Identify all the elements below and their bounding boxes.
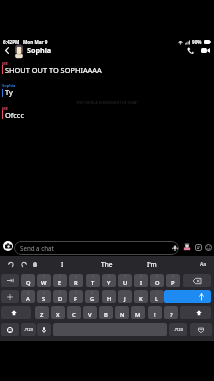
button[interactable]: Redo <box>18 259 28 269</box>
button[interactable]: H <box>102 290 116 303</box>
button[interactable]: Shift <box>180 306 211 319</box>
button[interactable]: T <box>86 274 100 287</box>
staticText: J <box>124 295 126 303</box>
button[interactable]: C <box>67 306 81 319</box>
button[interactable]: U <box>118 274 132 287</box>
staticText: X <box>56 311 60 319</box>
staticText: 8 <box>140 275 142 279</box>
staticText: Ofccc <box>5 110 24 120</box>
staticText: G <box>90 295 95 303</box>
button[interactable]: Send <box>164 290 211 303</box>
button[interactable]: I <box>52 258 72 270</box>
staticText: ) <box>157 291 158 295</box>
button[interactable]: Send a chat <box>14 241 179 255</box>
button[interactable]: L <box>150 290 164 303</box>
button[interactable]: Symbols <box>21 323 36 336</box>
staticText: T <box>91 279 95 287</box>
staticText: C <box>72 311 76 319</box>
button[interactable]: Shift <box>1 306 31 319</box>
button[interactable]: O <box>150 274 164 287</box>
button[interactable]: Voice input <box>37 323 51 336</box>
staticText: Mon Mar 9 <box>23 39 48 45</box>
staticText: Send a chat <box>20 244 54 252</box>
staticText: Q <box>26 279 31 287</box>
button[interactable]: K <box>134 290 148 303</box>
staticText: N <box>120 311 125 319</box>
button[interactable]: R <box>69 274 83 287</box>
button[interactable]: B <box>99 306 113 319</box>
button[interactable]: X <box>51 306 65 319</box>
staticText: 7 <box>124 275 126 279</box>
staticText: The <box>101 260 113 269</box>
button[interactable]: I <box>134 274 148 287</box>
staticText: ( <box>141 291 142 295</box>
staticText: V <box>88 311 92 319</box>
button[interactable]: M <box>131 306 145 319</box>
staticText: I <box>140 279 143 287</box>
button[interactable]: Bitmoji <box>182 242 192 252</box>
staticText: ! <box>154 311 156 319</box>
staticText: ' <box>74 307 75 311</box>
staticText: YOU TOOK A SCREENSHOT OF CHAT! <box>0 100 214 105</box>
button[interactable]: Q <box>21 274 35 287</box>
button[interactable]: Stickers <box>193 242 203 252</box>
button[interactable]: ! <box>148 306 162 319</box>
staticText: P <box>171 279 175 287</box>
button[interactable]: Emoji <box>203 242 213 252</box>
button[interactable]: Z <box>35 306 49 319</box>
staticText: F <box>74 295 78 303</box>
button[interactable]: A <box>21 290 35 303</box>
button[interactable]: W <box>37 274 51 287</box>
staticText: 6:42PM <box>3 39 20 45</box>
staticText: % <box>75 291 78 295</box>
staticText: / <box>121 307 123 311</box>
staticText: I <box>61 260 64 269</box>
button[interactable]: The <box>96 258 118 270</box>
button[interactable]: Emoji <box>1 323 19 336</box>
staticText: + <box>124 291 126 295</box>
staticText: Ty <box>5 87 13 97</box>
button[interactable]: Back <box>0 42 13 58</box>
staticText: Sophia <box>2 83 16 88</box>
staticText: A <box>26 295 30 303</box>
staticText: 6 <box>108 275 110 279</box>
staticText: @ <box>27 291 30 295</box>
button[interactable]: V <box>83 306 97 319</box>
button[interactable]: Video call <box>197 42 213 58</box>
button[interactable]: ? <box>164 306 178 319</box>
button[interactable]: Y <box>102 274 116 287</box>
staticText: Sophia <box>27 45 52 55</box>
button[interactable]: S <box>37 290 51 303</box>
button[interactable]: Undo <box>6 259 16 269</box>
button[interactable]: I'm <box>141 258 163 270</box>
button[interactable]: Cursor control <box>1 290 19 303</box>
button[interactable]: Symbols <box>169 323 187 336</box>
staticText: SHOUT OUT TO SOPHIAAAA <box>5 65 102 75</box>
staticText: L <box>155 295 159 303</box>
button[interactable]: Camera <box>3 241 13 251</box>
staticText: B <box>104 311 108 319</box>
button[interactable]: G <box>85 290 99 303</box>
button[interactable]: P <box>166 274 180 287</box>
staticText: K <box>139 295 143 303</box>
button[interactable]: Text settings <box>197 258 210 270</box>
staticText: R <box>74 279 78 287</box>
button[interactable]: Stickers <box>190 323 212 336</box>
button[interactable]: Call <box>184 42 197 58</box>
button[interactable]: Send <box>171 244 179 252</box>
button[interactable]: N <box>115 306 129 319</box>
button[interactable]: Clipboard <box>30 259 40 269</box>
button[interactable]: F <box>69 290 83 303</box>
button[interactable]: E <box>53 274 67 287</box>
staticText: Z <box>40 311 44 319</box>
button[interactable]: D <box>53 290 67 303</box>
button[interactable]: Tab <box>1 274 19 287</box>
button[interactable]: Backspace <box>183 274 211 287</box>
staticText: W <box>41 279 47 287</box>
button[interactable]: J <box>118 290 132 303</box>
staticText: E <box>58 279 62 287</box>
